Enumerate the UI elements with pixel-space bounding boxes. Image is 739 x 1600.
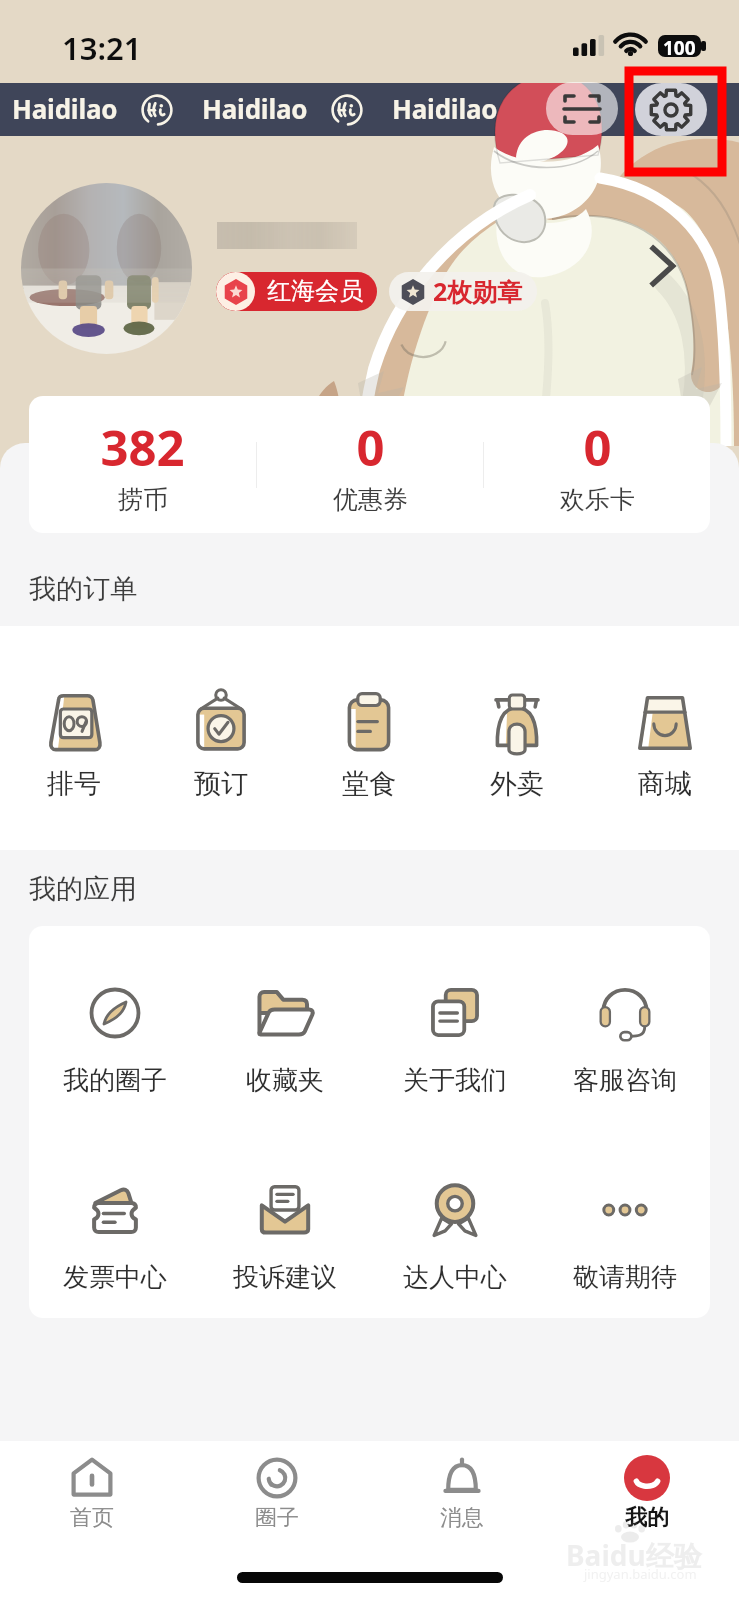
staticText: 我的应用 (29, 872, 137, 906)
staticText: 敬请期待 (573, 1261, 677, 1294)
button[interactable]: 敬请期待 (540, 1181, 710, 1294)
staticText: 0 (356, 414, 385, 481)
button[interactable]: 收藏夹 (200, 984, 370, 1097)
staticText: 382 (100, 414, 185, 481)
staticText: 13:21 (62, 27, 142, 69)
button[interactable]: 设置 (635, 83, 707, 136)
button[interactable]: 发票中心 (29, 1181, 200, 1294)
button[interactable]: 382 (29, 414, 256, 515)
staticText: jingyan.baidu.com (584, 1565, 697, 1583)
staticText: 圈子 (255, 1504, 299, 1532)
button[interactable]: 查看个人资料 (632, 236, 692, 296)
staticText: 首页 (70, 1504, 114, 1532)
staticText: 2枚勋章 (433, 274, 523, 308)
button[interactable]: 外卖 (443, 626, 591, 801)
button[interactable]: 客服咨询 (540, 984, 710, 1097)
staticText: Haidilao (392, 91, 498, 126)
button[interactable]: 关于我们 (370, 984, 540, 1097)
staticText: 我的圈子 (63, 1064, 167, 1097)
staticText: 达人中心 (403, 1261, 507, 1294)
staticText: 发票中心 (63, 1261, 167, 1294)
button[interactable]: 堂食 (295, 626, 443, 801)
button[interactable]: 0 (257, 414, 483, 515)
button[interactable]: 商城 (591, 626, 739, 801)
button[interactable]: 我的 (554, 1455, 739, 1532)
staticText: 排号 (47, 767, 101, 801)
button[interactable]: 圈子 (184, 1455, 369, 1532)
staticText: 我的 (625, 1504, 669, 1532)
button[interactable]: 达人中心 (370, 1181, 540, 1294)
staticText: 欢乐卡 (560, 484, 635, 515)
button[interactable]: 预订 (147, 626, 295, 801)
staticText: 商城 (638, 767, 692, 801)
button[interactable]: 首页 (0, 1455, 184, 1532)
staticText: 我的订单 (29, 572, 137, 606)
staticText: Haidilao (202, 91, 308, 126)
staticText: 捞币 (118, 484, 168, 515)
button[interactable]: 消息 (369, 1455, 554, 1532)
staticText: 外卖 (490, 767, 544, 801)
staticText: 投诉建议 (233, 1261, 337, 1294)
button[interactable]: 2枚勋章 (389, 272, 537, 311)
staticText: 堂食 (342, 767, 396, 801)
button[interactable]: 排号 (0, 626, 147, 801)
button[interactable]: 我的圈子 (29, 984, 200, 1097)
staticText: 收藏夹 (246, 1064, 324, 1097)
staticText: 关于我们 (403, 1064, 507, 1097)
staticText: 预订 (194, 767, 248, 801)
staticText: Haidilao (12, 91, 118, 126)
staticText: 100 (663, 35, 696, 57)
staticText: Baidu经验 (566, 1536, 702, 1574)
staticText: 0 (583, 414, 612, 481)
button[interactable]: 头像 (21, 183, 192, 354)
button[interactable]: 0 (484, 414, 710, 515)
button[interactable]: 扫一扫 (546, 82, 618, 135)
button[interactable]: 红海会员 (216, 272, 377, 311)
staticText: 客服咨询 (573, 1064, 677, 1097)
staticText: 消息 (440, 1504, 484, 1532)
staticText: 红海会员 (267, 276, 363, 306)
staticText: 优惠券 (333, 484, 408, 515)
button[interactable]: 投诉建议 (200, 1181, 370, 1294)
